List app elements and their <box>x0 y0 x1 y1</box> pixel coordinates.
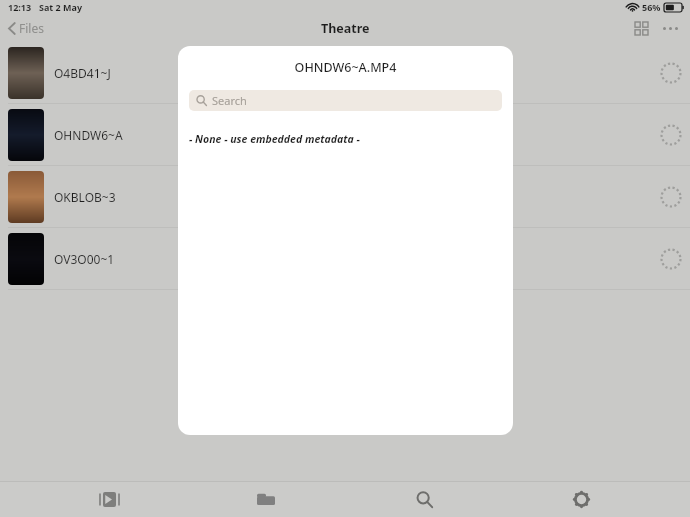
staticText: Files <box>19 20 44 36</box>
button[interactable]: Search <box>407 482 441 516</box>
staticText: 56% <box>642 1 661 13</box>
button[interactable]: Grid view <box>631 18 652 39</box>
staticText: 12:13 <box>8 1 32 13</box>
button[interactable]: Settings <box>564 482 598 516</box>
other: Download <box>660 248 682 270</box>
button[interactable]: Search <box>189 90 502 111</box>
staticText: Search <box>212 93 247 108</box>
button[interactable]: - None - use embedded metadata - <box>178 130 513 148</box>
button[interactable]: O4BD41~J <box>0 42 690 103</box>
staticText: OV3O00~1 <box>54 251 115 267</box>
staticText: Theatre <box>321 20 370 37</box>
staticText: O4BD41~J <box>54 65 111 81</box>
staticText: OHNDW6~A.MP4 <box>178 59 513 76</box>
button[interactable]: Folders <box>249 482 283 516</box>
other: Download <box>660 62 682 84</box>
button[interactable]: More options <box>659 22 682 35</box>
button[interactable]: OHNDW6~A <box>0 104 690 165</box>
staticText: - None - use embedded metadata - <box>189 132 360 146</box>
button[interactable]: OV3O00~1 <box>0 228 690 289</box>
other: Download <box>660 124 682 146</box>
button[interactable]: OKBLOB~3 <box>0 166 690 227</box>
other: Download <box>660 186 682 208</box>
staticText: OKBLOB~3 <box>54 189 116 205</box>
staticText: OHNDW6~A <box>54 127 123 143</box>
button[interactable]: Files <box>4 17 48 39</box>
staticText: Sat 2 May <box>39 1 83 13</box>
button[interactable]: Videos <box>92 482 126 516</box>
